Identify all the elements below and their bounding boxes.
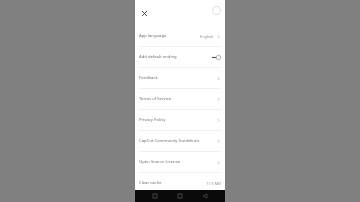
button[interactable]: Privacy Policy <box>135 110 225 130</box>
button[interactable]: Feedback <box>135 68 225 88</box>
staticText: Add default ending <box>139 54 212 60</box>
button[interactable]: CapCut Community Guidelines <box>135 131 225 151</box>
staticText: Terms of Service <box>139 96 214 102</box>
button[interactable]: Back <box>200 191 210 201</box>
staticText: CapCut Community Guidelines <box>139 138 214 144</box>
staticText: English <box>200 34 214 39</box>
button[interactable]: Profile <box>212 6 221 15</box>
button[interactable]: Clear cache <box>135 173 225 193</box>
button[interactable]: App language <box>135 26 225 46</box>
button[interactable]: Close <box>138 7 150 19</box>
staticText: App language <box>139 33 200 39</box>
button[interactable]: Recents <box>150 191 160 201</box>
staticText: 11.5 MB <box>206 181 221 186</box>
staticText: Clear cache <box>139 180 206 186</box>
staticText: Open Source License <box>139 159 214 165</box>
button[interactable]: Home <box>175 191 185 201</box>
button[interactable]: Terms of Service <box>135 89 225 109</box>
button[interactable]: Open Source License <box>135 152 225 172</box>
button[interactable]: Add default ending toggle <box>212 55 221 60</box>
staticText: Feedback <box>139 75 214 81</box>
staticText: Privacy Policy <box>139 117 214 123</box>
button[interactable]: Add default ending <box>135 47 225 67</box>
